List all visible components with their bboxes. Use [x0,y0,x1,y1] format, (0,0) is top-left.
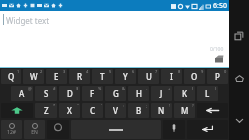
staticText: F [90,88,95,99]
staticText: S [44,88,49,99]
staticText: A [19,88,25,99]
button[interactable]: Voice input [163,120,185,139]
other: Keyboard [214,55,224,65]
button[interactable]: Shift [1,103,33,118]
button[interactable]: T [92,69,113,84]
staticText: Y [123,71,128,82]
button[interactable]: Y [115,69,136,84]
button[interactable]: Enter [187,120,228,139]
button[interactable]: W [23,69,44,84]
staticText: 5 [109,69,112,74]
staticText: @ [28,86,32,91]
staticText: I [170,71,173,82]
staticText: 6 [132,69,135,74]
staticText: X [67,105,72,116]
staticText: O [191,71,198,82]
staticText: 8 [178,69,181,74]
staticText: N [158,105,165,116]
button[interactable]: Back [229,110,249,130]
staticText: ? [192,103,194,108]
staticText: H [136,88,142,99]
staticText: 2 [40,69,43,74]
staticText: $ [76,86,79,91]
button[interactable]: A [11,86,33,101]
staticText: 4 [86,69,89,74]
staticText: ; [146,103,148,108]
staticText: 3 [63,69,66,74]
staticText: Z [44,105,49,116]
button[interactable]: M [174,103,195,118]
staticText: U [146,71,152,82]
button[interactable]: Space [71,120,161,139]
staticText: ( [192,86,194,91]
button[interactable]: I [161,69,182,84]
button[interactable]: R [69,69,90,84]
staticText: C [90,105,96,116]
staticText: ' [101,103,102,108]
staticText: & [122,86,125,91]
staticText: 0/100 [210,46,224,53]
button[interactable]: U [138,69,159,84]
staticText: - [146,86,148,91]
button[interactable]: K [174,86,195,101]
staticText: T [100,71,105,82]
button[interactable]: C [82,103,103,118]
staticText: ! [169,103,171,108]
button[interactable]: Settings [47,120,69,139]
staticText: M [181,105,189,116]
button[interactable]: Q [1,69,21,84]
staticText: 7 [155,69,158,74]
button[interactable]: B [128,103,149,118]
button[interactable]: X [59,103,80,118]
button[interactable]: EN [24,120,45,139]
staticText: Widget text [6,15,50,26]
staticText: R [77,71,83,82]
button[interactable]: H [128,86,149,101]
staticText: : [123,103,125,108]
staticText: D [67,88,73,99]
button[interactable]: D [59,86,80,101]
staticText: 0 [224,69,227,74]
staticText: V [113,105,118,116]
button[interactable]: E [46,69,67,84]
staticText: " [77,103,79,108]
button[interactable]: N [151,103,172,118]
button[interactable]: P [207,69,228,84]
button[interactable]: V [105,103,126,118]
button[interactable]: O [184,69,205,84]
button[interactable]: G [105,86,126,101]
staticText: # [53,86,56,91]
staticText: 1 [17,69,20,74]
staticText: ) [215,86,217,91]
staticText: E [54,71,59,82]
staticText: * [53,103,56,108]
staticText: 9 [201,69,204,74]
staticText: K [182,88,188,99]
button[interactable]: Z [35,103,57,118]
button[interactable]: Recents [229,26,249,46]
button[interactable]: S [35,86,57,101]
staticText: J [160,88,163,99]
staticText: G [113,88,119,99]
staticText: Q [8,71,15,82]
staticText: % [98,86,102,91]
button[interactable]: L [197,86,218,101]
staticText: + [168,86,171,91]
button[interactable]: Backspace [197,103,228,118]
button[interactable]: F [82,86,103,101]
button[interactable]: Home [229,68,249,88]
staticText: 6:50 [213,1,227,11]
button[interactable]: 12# [1,120,22,139]
staticText: P [215,71,220,82]
staticText: W [30,71,38,82]
staticText: L [205,88,210,99]
staticText: B [136,105,142,116]
button[interactable]: J [151,86,172,101]
staticText: 12# [7,129,16,136]
staticText: EN [31,129,38,136]
